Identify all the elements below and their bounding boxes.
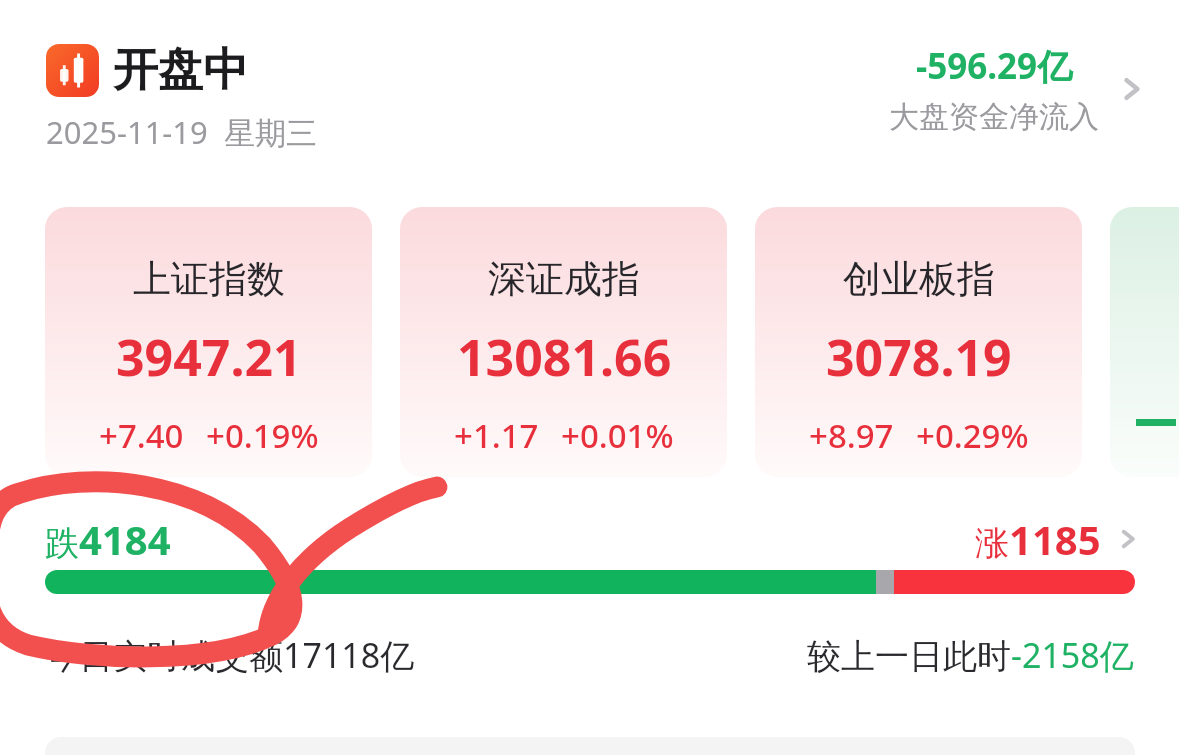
staticText: +7.40	[99, 413, 184, 458]
button[interactable]	[45, 570, 1135, 594]
staticText: 创业板指	[843, 255, 995, 303]
other: 查看大盘资金详情	[1115, 72, 1149, 106]
staticText: 跌4184	[45, 512, 171, 566]
staticText: 较上一日此时-2158亿	[807, 632, 1134, 678]
staticText: 3947.21	[116, 323, 302, 391]
staticText: +0.19%	[206, 413, 319, 458]
staticText: +1.17	[454, 413, 539, 458]
button[interactable]: 涨1185	[975, 512, 1143, 566]
staticText: 涨1185	[975, 512, 1101, 566]
staticText: +0.29%	[916, 413, 1029, 458]
staticText: -596.29亿	[916, 42, 1073, 90]
staticText: 大盘资金净流入	[889, 98, 1099, 136]
staticText: 开盘中	[113, 42, 248, 99]
staticText: 2025-11-19 星期三	[46, 111, 317, 153]
other: 涨跌详情	[1113, 524, 1143, 554]
staticText: 上证指数	[133, 255, 285, 303]
button[interactable]: 上证指数	[45, 207, 372, 477]
staticText: 深证成指	[488, 255, 640, 303]
button[interactable]	[1110, 207, 1179, 477]
button[interactable]: 创业板指	[755, 207, 1082, 477]
staticText: +0.01%	[561, 413, 674, 458]
button[interactable]: 深证成指	[400, 207, 727, 477]
button[interactable]: -596.29亿	[889, 42, 1149, 136]
staticText: +8.97	[809, 413, 894, 458]
staticText: 13081.66	[457, 323, 672, 391]
staticText: 今日实时成交额17118亿	[45, 632, 415, 678]
staticText: 3078.19	[826, 323, 1012, 391]
